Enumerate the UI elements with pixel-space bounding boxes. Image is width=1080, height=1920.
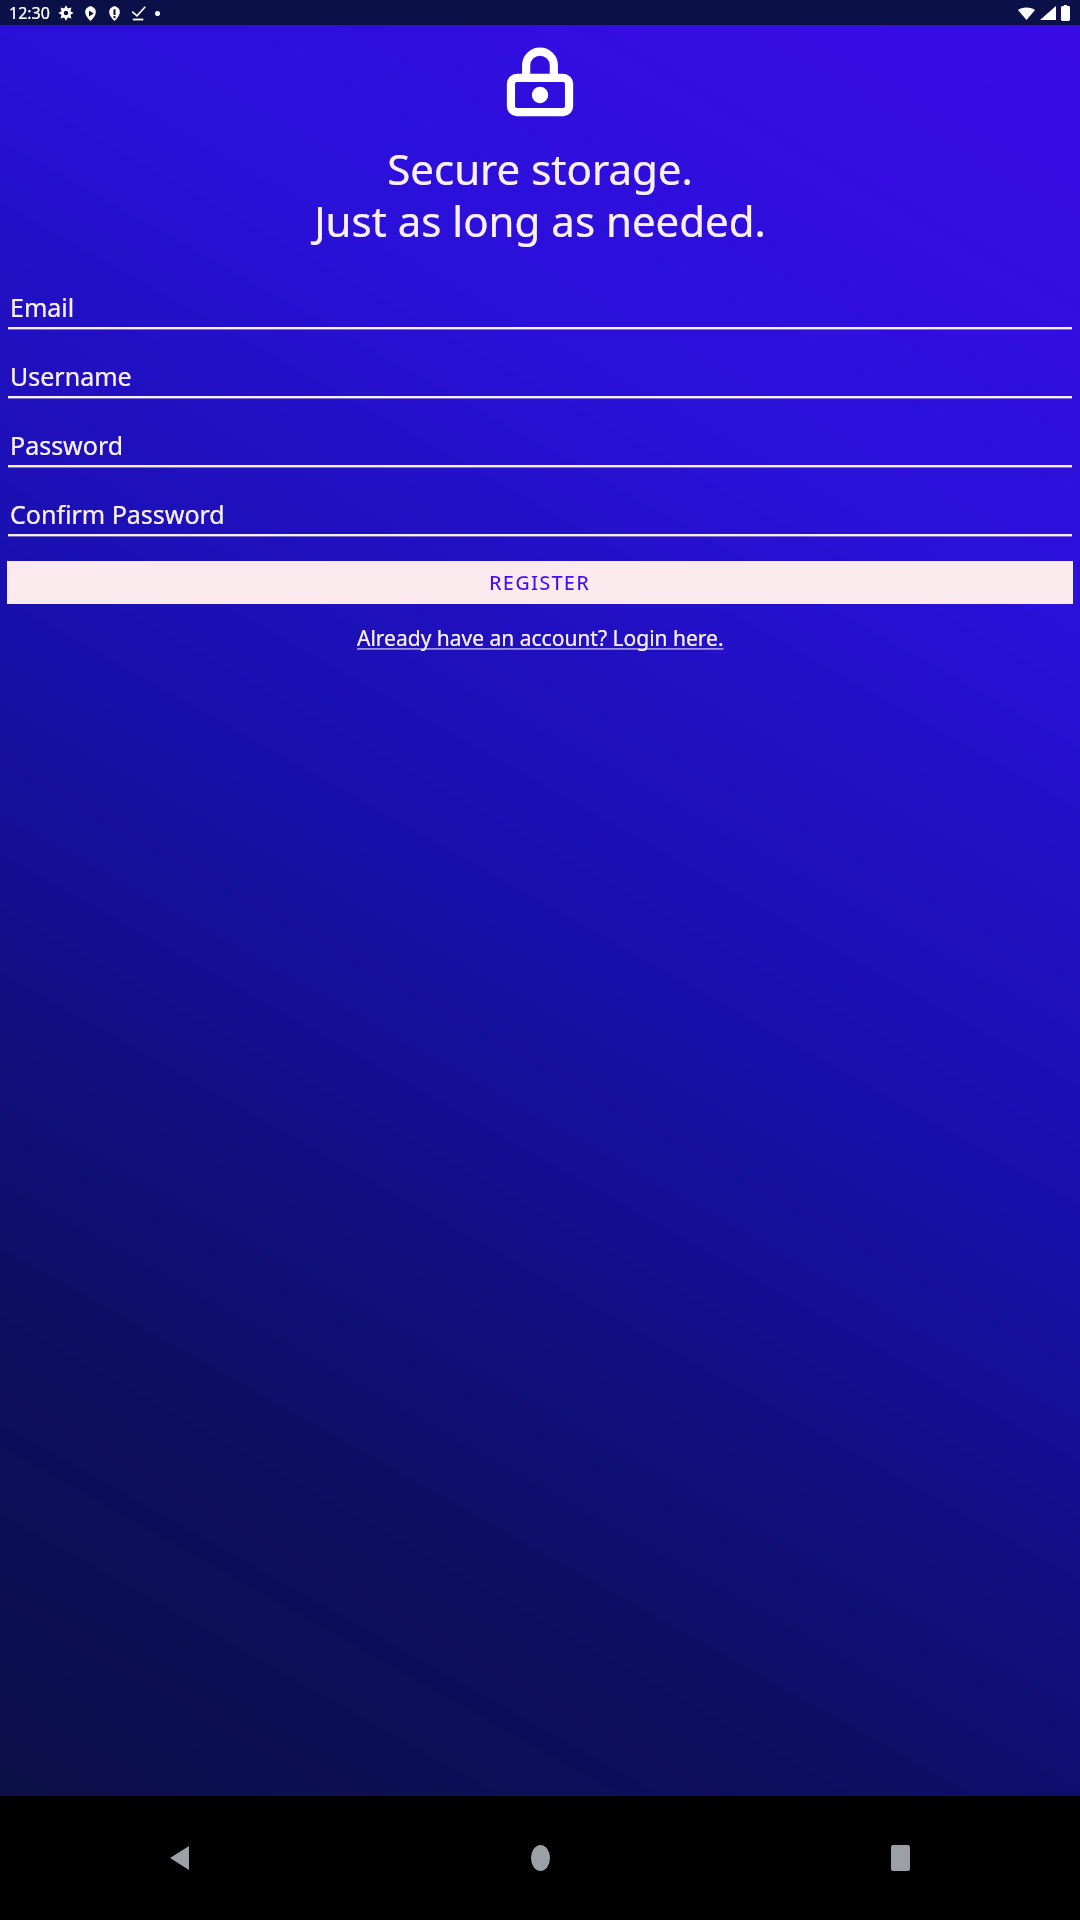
staticText: Email xyxy=(10,290,75,324)
button[interactable]: Recent apps xyxy=(720,1796,1080,1920)
staticText: Password xyxy=(10,428,124,462)
button[interactable]: Home xyxy=(360,1796,720,1920)
button[interactable]: Username xyxy=(8,358,1072,399)
button[interactable]: Confirm Password xyxy=(8,496,1072,537)
other: Lock xyxy=(501,45,579,118)
staticText: REGISTER xyxy=(489,569,591,596)
staticText: 12:30 xyxy=(9,2,50,24)
button[interactable]: Back xyxy=(0,1796,360,1920)
button[interactable]: REGISTER xyxy=(7,561,1073,604)
button[interactable]: Email xyxy=(8,289,1072,330)
button[interactable]: Already have an account? Login here. xyxy=(345,620,736,657)
staticText: Username xyxy=(10,359,132,393)
button[interactable]: Password xyxy=(8,427,1072,468)
staticText: Secure storage. Just as long as needed. xyxy=(0,140,1080,249)
staticText: Confirm Password xyxy=(10,497,225,531)
staticText: Already have an account? Login here. xyxy=(357,624,724,653)
